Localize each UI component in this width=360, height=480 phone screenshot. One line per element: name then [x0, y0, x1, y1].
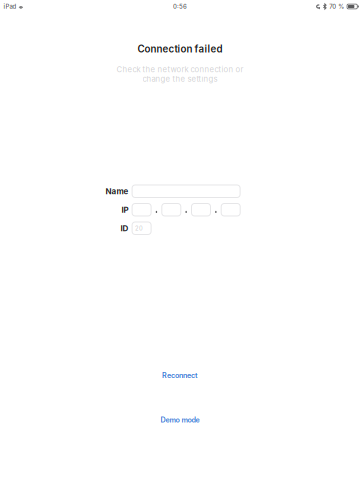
staticText: 20 — [135, 225, 143, 232]
staticText: ID — [120, 223, 128, 233]
staticText: 0:56 — [173, 3, 187, 10]
staticText: IP — [121, 205, 128, 215]
staticText: Connection failed — [137, 43, 222, 55]
button[interactable]: IP octet 3 — [191, 203, 210, 216]
staticText: iPad — [3, 3, 16, 10]
button[interactable]: Demo mode — [120, 412, 240, 428]
staticText: Reconnect — [162, 371, 198, 380]
button[interactable]: ID — [132, 222, 151, 234]
button[interactable]: Name — [132, 185, 240, 197]
staticText: Demo mode — [160, 416, 199, 424]
button[interactable]: Reconnect — [120, 367, 240, 383]
staticText: change the settings — [142, 74, 217, 83]
staticText: Check the network connection or — [116, 65, 243, 74]
button[interactable]: IP octet 2 — [162, 203, 181, 216]
staticText: Name — [105, 186, 128, 196]
button[interactable]: IP octet 4 — [221, 203, 240, 216]
button[interactable]: IP octet 1 — [132, 203, 151, 216]
staticText: 70 % — [329, 3, 344, 10]
